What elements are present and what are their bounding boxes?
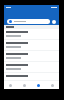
button[interactable]: Rooms [45,81,59,89]
button[interactable] [4,40,59,50]
button[interactable] [4,29,59,39]
button[interactable]: Chats [17,81,31,89]
button[interactable]: Meet [31,81,45,89]
button[interactable]: Search [7,19,50,24]
other: Search [9,20,12,23]
button[interactable] [4,73,59,80]
button[interactable]: Home [4,81,17,89]
button[interactable]: Account [52,20,56,24]
button[interactable] [4,62,59,72]
button[interactable] [4,51,59,61]
